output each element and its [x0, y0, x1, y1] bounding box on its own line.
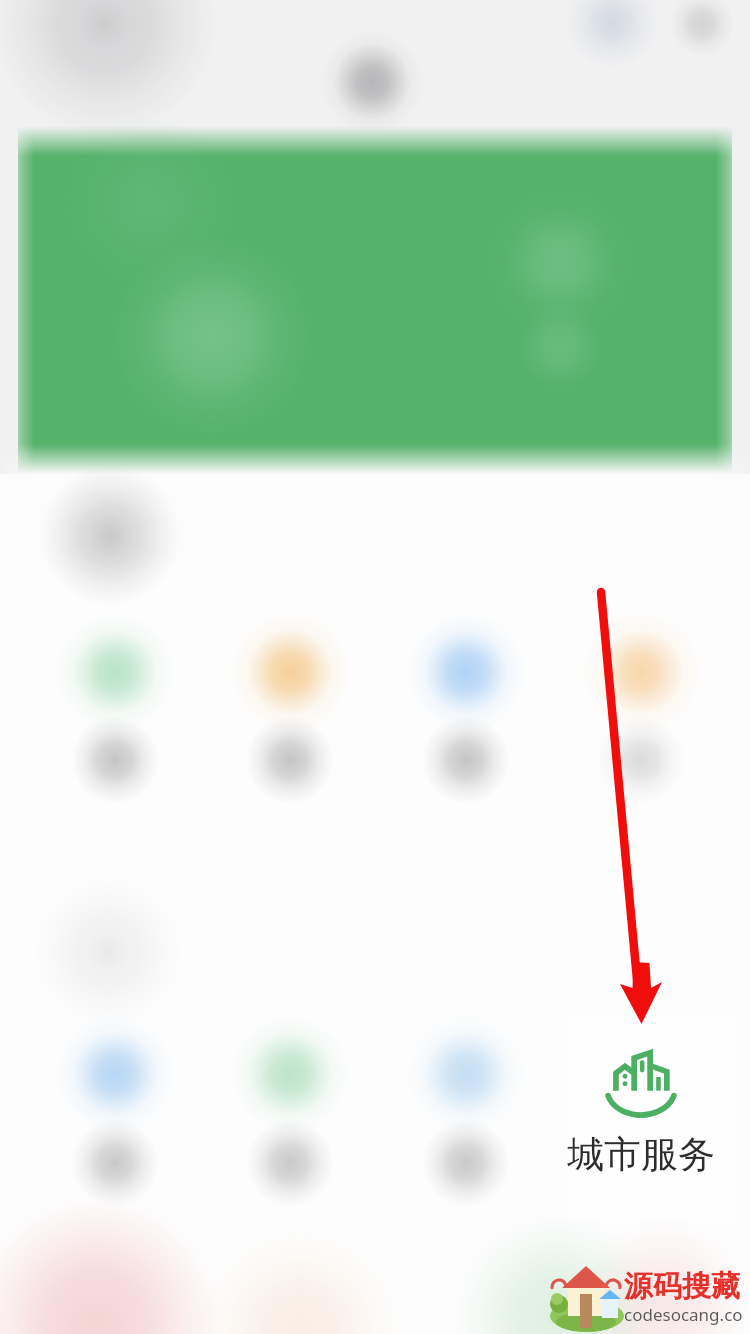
staticText: codesocang.com — [624, 1303, 748, 1329]
other: 城市服务 — [603, 1042, 679, 1118]
button[interactable]: 城市服务 — [551, 1022, 731, 1214]
staticText: 源码搜藏网 — [624, 1268, 748, 1306]
staticText: 城市服务 — [567, 1131, 715, 1178]
